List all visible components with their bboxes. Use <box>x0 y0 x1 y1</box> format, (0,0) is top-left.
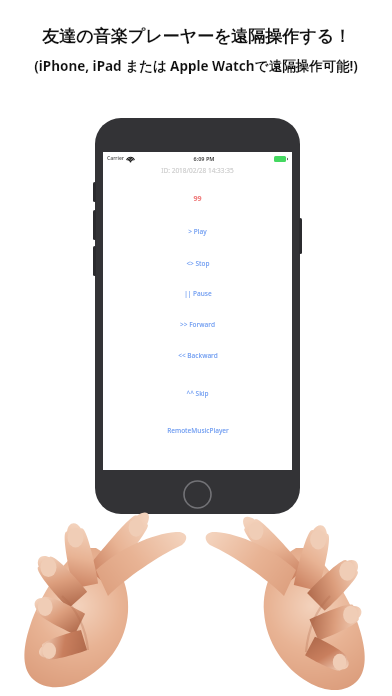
staticText: (iPhone, iPad または Apple Watchで遠隔操作可能!) <box>34 57 358 75</box>
button[interactable]: <> Stop <box>103 259 292 268</box>
staticText: RemoteMusicPlayer <box>167 426 229 435</box>
staticText: << Backward <box>178 351 218 360</box>
staticText: || Pause <box>184 289 212 298</box>
staticText: ^^ Skip <box>186 389 209 398</box>
staticText: > Play <box>188 227 207 236</box>
staticText: ID: 2018/02/28 14:33:35 <box>161 166 234 175</box>
staticText: 友達の音楽プレーヤーを遠隔操作する！ <box>42 26 351 47</box>
button[interactable]: >> Forward <box>103 320 292 329</box>
staticText: >> Forward <box>180 320 215 329</box>
button[interactable]: << Backward <box>103 351 292 360</box>
button[interactable]: RemoteMusicPlayer <box>103 426 292 435</box>
button[interactable]: ^^ Skip <box>103 389 292 398</box>
staticText: 99 <box>193 194 202 204</box>
staticText: 6:09 PM <box>193 155 215 162</box>
other: Home <box>183 480 212 509</box>
button[interactable]: > Play <box>103 227 292 236</box>
staticText: Carrier <box>107 155 124 162</box>
button[interactable]: || Pause <box>103 289 292 298</box>
staticText: <> Stop <box>186 259 210 268</box>
